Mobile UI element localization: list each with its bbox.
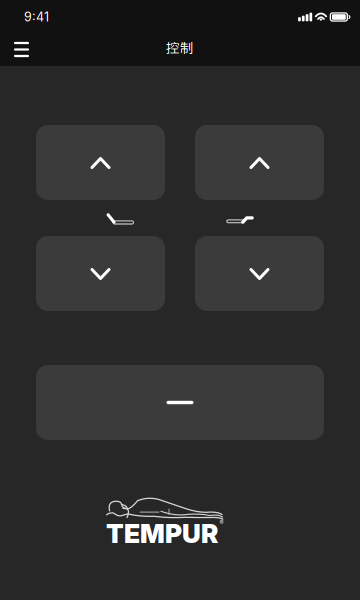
- staticText: TEMPUR: [106, 518, 218, 549]
- button[interactable]: Raise feet: [195, 125, 324, 200]
- button[interactable]: Raise head: [36, 125, 165, 200]
- button[interactable]: Lower feet: [195, 236, 324, 311]
- staticText: 9:41: [24, 9, 49, 25]
- staticText: 控制: [166, 37, 194, 57]
- button[interactable]: Flat: [36, 365, 324, 440]
- staticText: ®: [219, 519, 223, 526]
- button[interactable]: Menu: [0, 29, 41, 65]
- button[interactable]: Lower head: [36, 236, 165, 311]
